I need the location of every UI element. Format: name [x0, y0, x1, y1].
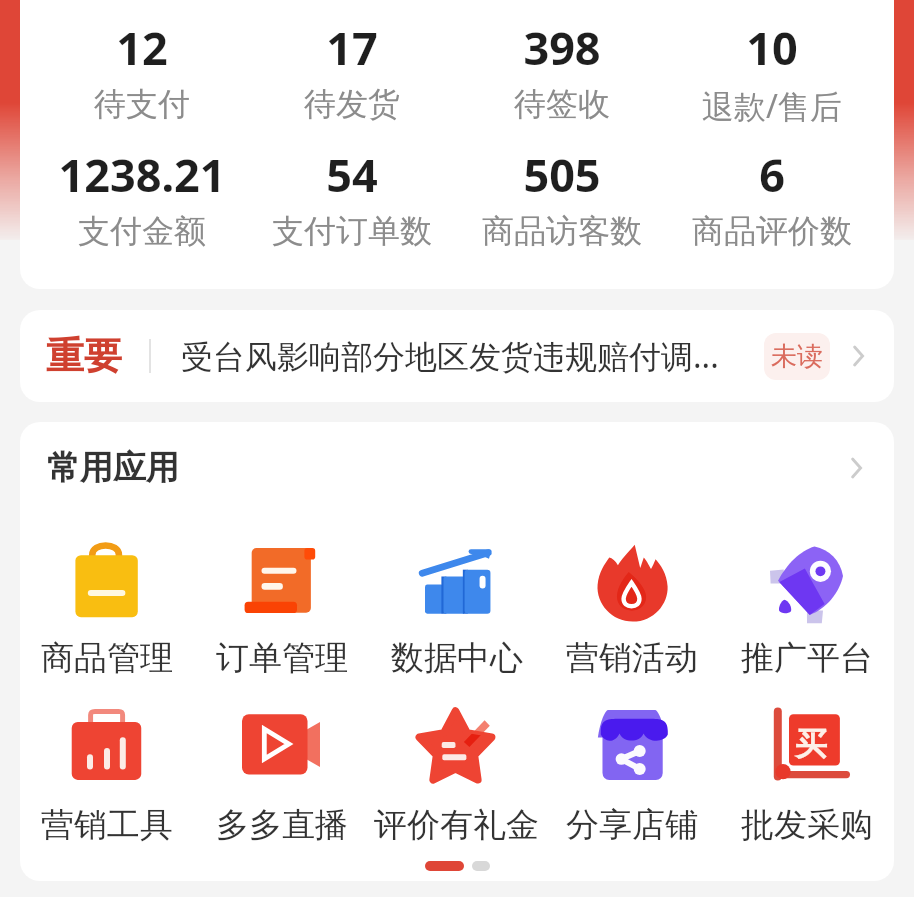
staticText: 商品管理: [41, 637, 173, 679]
staticText: 数据中心: [391, 637, 523, 679]
staticText: 待签收: [514, 84, 610, 124]
staticText: 营销工具: [41, 804, 173, 846]
staticText: 支付订单数: [272, 211, 432, 251]
staticText: 多多直播: [216, 804, 348, 846]
staticText: 12: [116, 17, 168, 78]
button[interactable]: 17: [247, 17, 457, 124]
staticText: 订单管理: [216, 637, 348, 679]
other: All apps: [840, 453, 870, 483]
staticText: 批发采购: [741, 804, 873, 846]
button[interactable]: 推广平台: [719, 540, 894, 679]
staticText: 商品评价数: [692, 211, 852, 251]
staticText: 受台风影响部分地区发货违规赔付调...: [181, 334, 758, 378]
button[interactable]: 12: [37, 17, 247, 124]
staticText: 6: [759, 144, 785, 205]
staticText: 未读: [771, 340, 823, 373]
button[interactable]: 订单管理: [194, 540, 369, 679]
staticText: 分享店铺: [566, 804, 698, 846]
button[interactable]: 分享店铺: [544, 707, 719, 846]
staticText: 10: [746, 17, 798, 78]
button[interactable]: 重要: [20, 310, 894, 402]
button[interactable]: 营销工具: [20, 707, 194, 846]
staticText: 待支付: [94, 84, 190, 124]
button[interactable]: 6: [667, 144, 877, 251]
button[interactable]: 买: [719, 707, 894, 846]
button[interactable]: 评价有礼金: [369, 707, 544, 846]
button[interactable]: 54: [247, 144, 457, 251]
staticText: 17: [326, 17, 378, 78]
staticText: 营销活动: [566, 637, 698, 679]
button[interactable]: 数据中心: [369, 540, 544, 679]
staticText: 支付金额: [78, 211, 206, 251]
staticText: 买: [795, 724, 827, 764]
staticText: 退款/售后: [702, 84, 842, 128]
button[interactable]: 1238.21: [37, 144, 247, 251]
staticText: 505: [523, 144, 601, 205]
staticText: 评价有礼金: [374, 804, 539, 846]
staticText: 1238.21: [58, 144, 226, 205]
button[interactable]: 营销活动: [544, 540, 719, 679]
staticText: 398: [523, 17, 601, 78]
other: More: [842, 341, 872, 371]
button[interactable]: 398: [457, 17, 667, 124]
staticText: 商品访客数: [482, 211, 642, 251]
staticText: 重要: [46, 332, 122, 380]
button[interactable]: 多多直播: [194, 707, 369, 846]
button[interactable]: 常用应用: [20, 422, 894, 514]
staticText: 常用应用: [47, 447, 179, 489]
button[interactable]: 商品管理: [20, 540, 194, 679]
staticText: 54: [326, 144, 378, 205]
button[interactable]: 10: [667, 17, 877, 128]
staticText: 推广平台: [741, 637, 873, 679]
button[interactable]: 505: [457, 144, 667, 251]
staticText: 待发货: [304, 84, 400, 124]
